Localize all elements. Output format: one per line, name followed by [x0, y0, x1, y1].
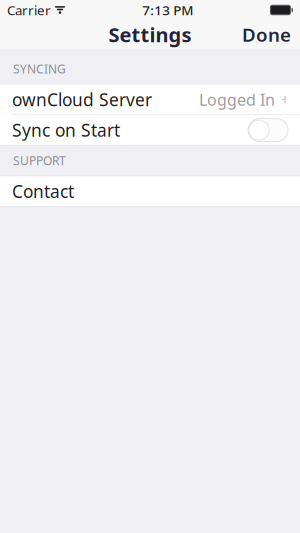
staticText: Carrier: [7, 1, 51, 19]
staticText: ownCloud Server: [12, 88, 152, 111]
staticText: Settings: [108, 21, 191, 48]
staticText: Logged In: [199, 89, 275, 110]
staticText: SYNCING: [13, 61, 66, 77]
button[interactable]: Contact: [0, 176, 300, 206]
button[interactable]: ownCloud Server: [0, 84, 300, 114]
staticText: SUPPORT: [13, 153, 66, 169]
staticText: Contact: [12, 180, 74, 203]
staticText: 7:13 PM: [142, 1, 193, 19]
staticText: Sync on Start: [12, 119, 120, 142]
button[interactable]: Done: [233, 16, 300, 53]
button[interactable]: Sync on Start: [248, 119, 288, 142]
staticText: Done: [242, 22, 291, 47]
